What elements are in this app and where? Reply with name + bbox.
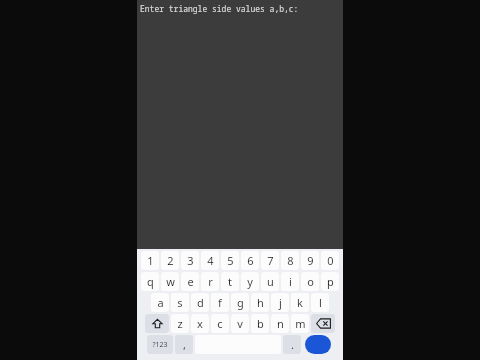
button[interactable]: Backspace	[311, 314, 335, 333]
button[interactable]: t	[221, 272, 239, 291]
button[interactable]: 6	[241, 251, 259, 270]
staticText: e	[187, 274, 194, 289]
button[interactable]: f	[211, 293, 229, 312]
staticText: n	[277, 316, 284, 331]
staticText: g	[237, 295, 244, 310]
button[interactable]: c	[211, 314, 229, 333]
staticText: b	[257, 316, 264, 331]
staticText: z	[177, 316, 183, 331]
button[interactable]: r	[201, 272, 219, 291]
staticText: 2	[167, 253, 174, 268]
button[interactable]: i	[281, 272, 299, 291]
staticText: f	[218, 295, 222, 310]
button[interactable]: v	[231, 314, 249, 333]
staticText: a	[157, 295, 164, 310]
button[interactable]: 8	[281, 251, 299, 270]
button[interactable]: 7	[261, 251, 279, 270]
staticText: 9	[307, 253, 314, 268]
staticText: p	[327, 274, 334, 289]
staticText: l	[319, 295, 322, 310]
staticText: x	[197, 316, 203, 331]
button[interactable]: q	[141, 272, 159, 291]
button[interactable]: x	[191, 314, 209, 333]
staticText: ?123	[152, 340, 168, 350]
staticText: y	[247, 274, 253, 289]
staticText: v	[237, 316, 243, 331]
button[interactable]: ,	[175, 335, 193, 354]
staticText: 3	[187, 253, 194, 268]
button[interactable]: z	[171, 314, 189, 333]
button[interactable]: e	[181, 272, 199, 291]
button[interactable]: 4	[201, 251, 219, 270]
button[interactable]: o	[301, 272, 319, 291]
button[interactable]: 2	[161, 251, 179, 270]
staticText: s	[177, 295, 183, 310]
button[interactable]: 1	[141, 251, 159, 270]
button[interactable]: 0	[321, 251, 339, 270]
staticText: 1	[147, 253, 154, 268]
staticText: u	[267, 274, 274, 289]
button[interactable]: ?123	[147, 335, 173, 354]
staticText: w	[166, 274, 175, 289]
staticText: 5	[227, 253, 234, 268]
staticText: ,	[183, 337, 186, 352]
button[interactable]: 9	[301, 251, 319, 270]
staticText: 0	[327, 253, 334, 268]
button[interactable]: 5	[221, 251, 239, 270]
button[interactable]: y	[241, 272, 259, 291]
button[interactable]: g	[231, 293, 249, 312]
button[interactable]: b	[251, 314, 269, 333]
staticText: t	[228, 274, 232, 289]
button[interactable]: p	[321, 272, 339, 291]
staticText: 8	[287, 253, 294, 268]
staticText: d	[197, 295, 204, 310]
staticText: o	[307, 274, 314, 289]
staticText: 4	[207, 253, 214, 268]
button[interactable]: n	[271, 314, 289, 333]
staticText: j	[279, 295, 282, 310]
staticText: c	[217, 316, 223, 331]
button[interactable]: w	[161, 272, 179, 291]
button[interactable]: Shift	[145, 314, 169, 333]
button[interactable]: m	[291, 314, 309, 333]
staticText: q	[147, 274, 154, 289]
staticText: 7	[267, 253, 274, 268]
staticText: r	[208, 274, 213, 289]
button[interactable]: Enter	[303, 335, 333, 354]
staticText: k	[297, 295, 303, 310]
button[interactable]: d	[191, 293, 209, 312]
button[interactable]: a	[151, 293, 169, 312]
button[interactable]: j	[271, 293, 289, 312]
button[interactable]: u	[261, 272, 279, 291]
button[interactable]: 3	[181, 251, 199, 270]
staticText: i	[289, 274, 292, 289]
button[interactable]: s	[171, 293, 189, 312]
staticText: m	[295, 316, 306, 331]
button[interactable]: k	[291, 293, 309, 312]
staticText: h	[257, 295, 264, 310]
staticText: Enter triangle side values a,b,c:	[140, 3, 299, 14]
staticText: .	[291, 337, 294, 352]
button[interactable]: .	[283, 335, 301, 354]
staticText: 6	[247, 253, 254, 268]
button[interactable]: h	[251, 293, 269, 312]
button[interactable]: l	[311, 293, 329, 312]
